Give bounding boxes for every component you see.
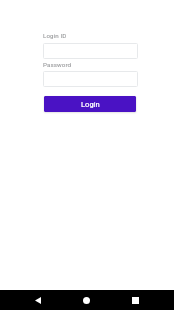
button[interactable]: Recent apps: [111, 290, 160, 310]
staticText: Login ID: [43, 32, 67, 39]
button[interactable]: [43, 43, 138, 59]
staticText: Password: [43, 61, 72, 68]
button[interactable]: Back: [14, 290, 62, 310]
button[interactable]: Login: [44, 96, 136, 112]
button[interactable]: [43, 71, 138, 87]
button[interactable]: Home: [62, 290, 111, 310]
staticText: Login: [81, 100, 100, 109]
